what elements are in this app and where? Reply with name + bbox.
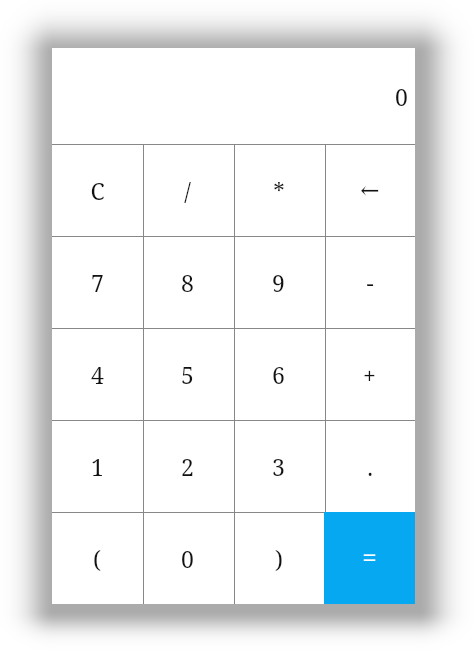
staticText: 1 xyxy=(91,451,104,482)
button[interactable]: 9 xyxy=(233,236,324,328)
button[interactable]: 3 xyxy=(233,420,324,512)
staticText: 7 xyxy=(91,267,104,298)
staticText: C xyxy=(90,175,105,206)
staticText: . xyxy=(367,451,373,482)
staticText: 6 xyxy=(272,359,285,390)
staticText: 3 xyxy=(272,451,285,482)
button[interactable]: 1 xyxy=(52,420,142,512)
staticText: ← xyxy=(360,177,380,204)
button[interactable]: = xyxy=(324,512,415,604)
button[interactable]: 0 xyxy=(142,512,233,604)
button[interactable]: 5 xyxy=(142,328,233,420)
button[interactable]: C xyxy=(52,144,142,236)
button[interactable]: 7 xyxy=(52,236,142,328)
staticText: 9 xyxy=(272,267,285,298)
staticText: 5 xyxy=(181,359,194,390)
button[interactable]: - xyxy=(324,236,415,328)
button[interactable]: ( xyxy=(52,512,142,604)
staticText: 0 xyxy=(181,543,194,574)
button[interactable]: 8 xyxy=(142,236,233,328)
staticText: 2 xyxy=(181,451,194,482)
staticText: - xyxy=(366,267,374,298)
staticText: = xyxy=(362,539,377,574)
button[interactable]: ← xyxy=(324,144,415,236)
staticText: / xyxy=(184,175,191,206)
button[interactable]: ) xyxy=(233,512,324,604)
staticText: ) xyxy=(275,543,283,574)
staticText: 0 xyxy=(395,81,408,112)
staticText: 8 xyxy=(181,267,194,298)
staticText: + xyxy=(363,359,376,390)
button[interactable]: 4 xyxy=(52,328,142,420)
button[interactable]: / xyxy=(142,144,233,236)
staticText: 4 xyxy=(91,359,104,390)
staticText: * xyxy=(273,175,285,206)
button[interactable]: 6 xyxy=(233,328,324,420)
button[interactable]: . xyxy=(324,420,415,512)
button[interactable]: + xyxy=(324,328,415,420)
staticText: ( xyxy=(93,543,101,574)
button[interactable]: * xyxy=(233,144,324,236)
button[interactable]: 2 xyxy=(142,420,233,512)
